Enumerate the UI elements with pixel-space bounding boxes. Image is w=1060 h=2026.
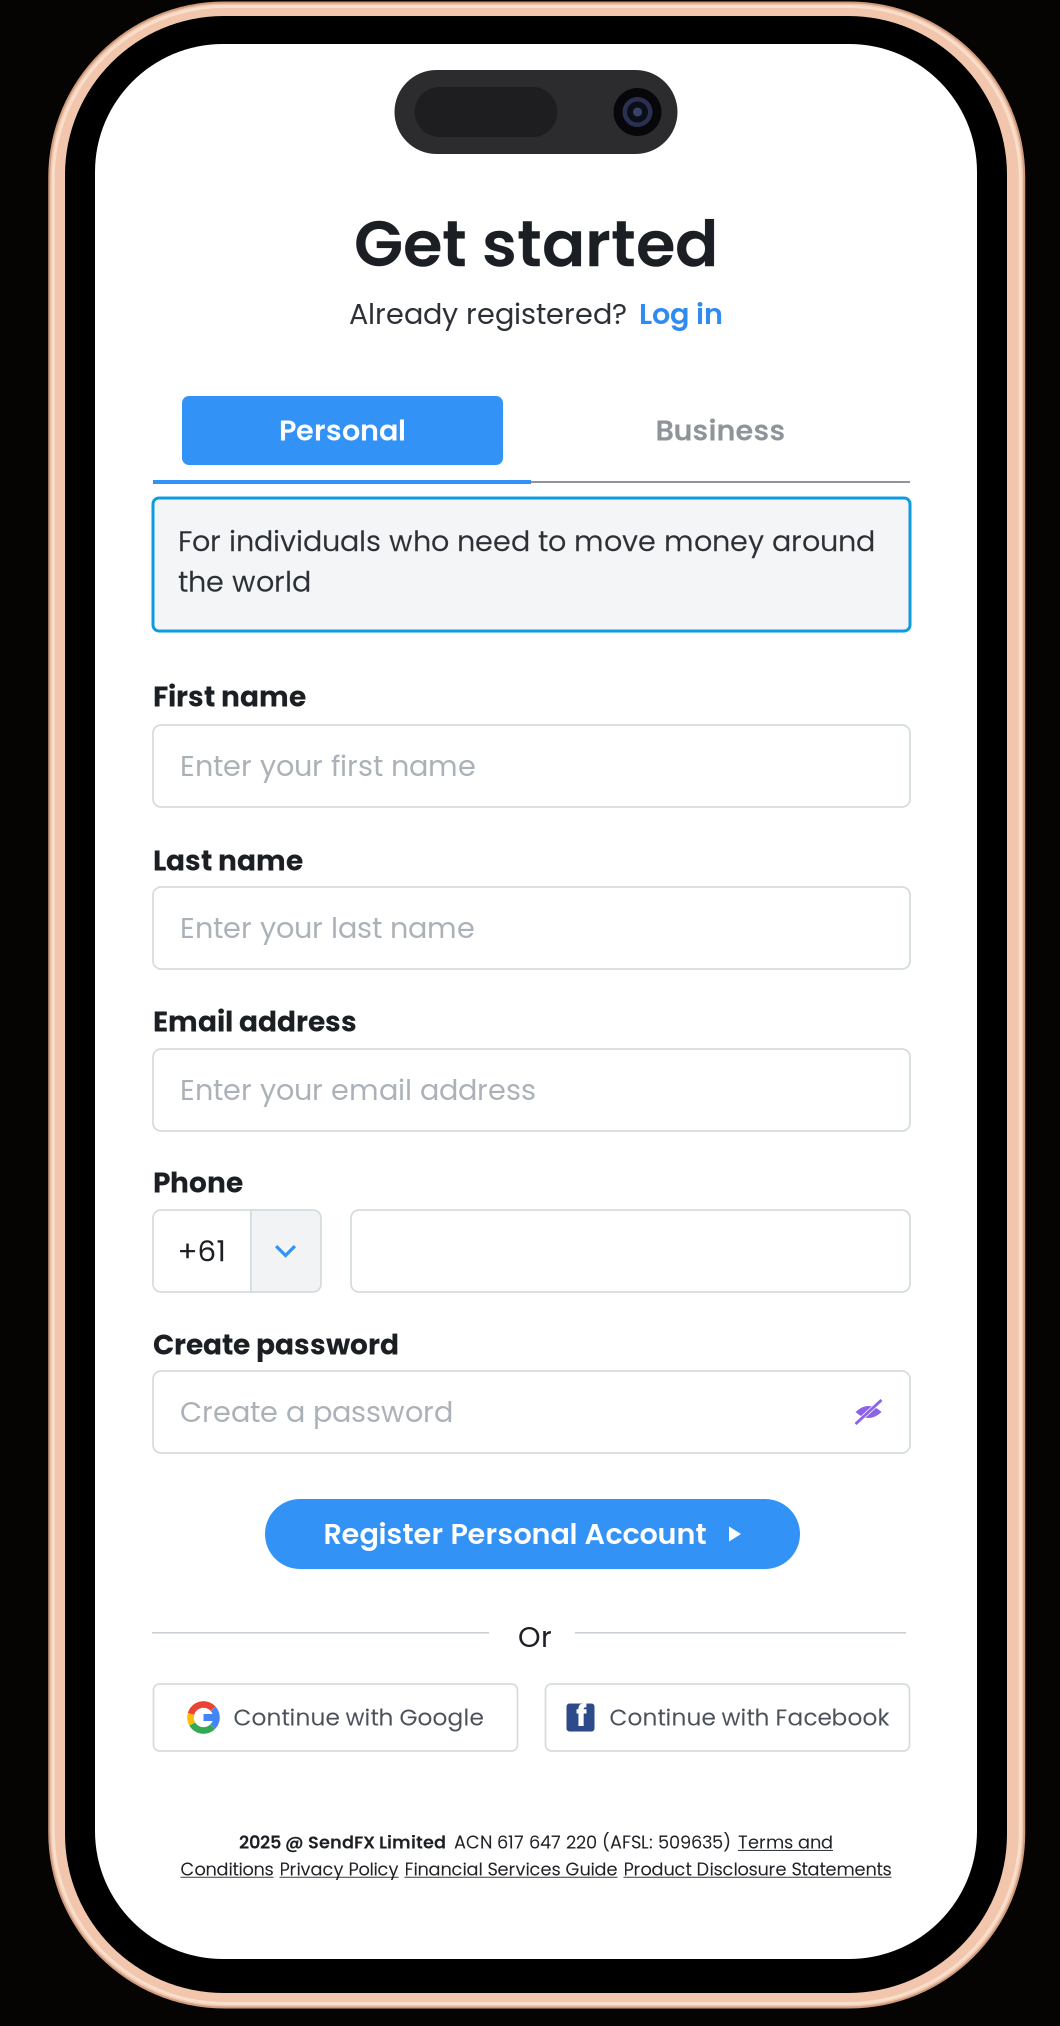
staticText: Phone	[153, 1163, 243, 1202]
button[interactable]: Email address	[153, 1049, 910, 1131]
button[interactable]: Show password	[854, 1399, 883, 1425]
staticText: ACN 617 647 220 (AFSL: 509635)	[454, 1830, 731, 1855]
staticText: Enter your last name	[180, 908, 475, 948]
staticText: Business	[655, 410, 785, 450]
button[interactable]: Phone number	[351, 1210, 910, 1292]
button[interactable]: Continue with Google	[153, 1684, 517, 1751]
staticText: Product Disclosure Statements	[623, 1857, 891, 1882]
staticText: Create a password	[180, 1392, 453, 1432]
staticText: Continue with Facebook	[609, 1701, 889, 1734]
staticText: Register Personal Account	[323, 1514, 706, 1554]
staticText: Personal	[279, 410, 406, 450]
button[interactable]: f	[545, 1684, 909, 1751]
staticText: First name	[153, 677, 306, 716]
button[interactable]: First name	[153, 725, 910, 807]
staticText: Or	[518, 1617, 552, 1657]
button[interactable]: Privacy Policy	[279, 1857, 398, 1882]
staticText: Enter your first name	[180, 746, 476, 786]
staticText: Last name	[153, 841, 303, 880]
staticText: +61	[177, 1230, 225, 1272]
staticText: Log in	[639, 294, 723, 334]
button[interactable]: Conditions	[180, 1857, 273, 1882]
staticText: Already registered?	[349, 294, 627, 334]
staticText: Create password	[153, 1325, 399, 1364]
staticText: Email address	[153, 1002, 357, 1041]
button[interactable]: Register Personal Account	[265, 1499, 800, 1569]
staticText: Financial Services Guide	[404, 1857, 617, 1882]
button[interactable]: Log in	[639, 294, 723, 334]
staticText: Get started	[354, 199, 718, 289]
staticText: For individuals who need to move money a…	[178, 521, 875, 602]
staticText: 2025 @ SendFX Limited	[239, 1830, 446, 1855]
button[interactable]: Last name	[153, 887, 910, 969]
staticText: Conditions	[180, 1857, 273, 1882]
button[interactable]: Personal	[153, 396, 531, 465]
staticText: f	[576, 1694, 587, 1737]
button[interactable]: Terms and	[738, 1830, 833, 1855]
button[interactable]: Product Disclosure Statements	[623, 1857, 891, 1882]
button[interactable]: Business	[531, 396, 909, 465]
staticText: Terms and	[738, 1830, 833, 1855]
staticText: Privacy Policy	[279, 1857, 398, 1882]
button[interactable]: Country code +61	[153, 1210, 321, 1292]
staticText: Continue with Google	[233, 1701, 483, 1734]
button[interactable]: Financial Services Guide	[404, 1857, 617, 1882]
staticText: Enter your email address	[180, 1070, 536, 1110]
